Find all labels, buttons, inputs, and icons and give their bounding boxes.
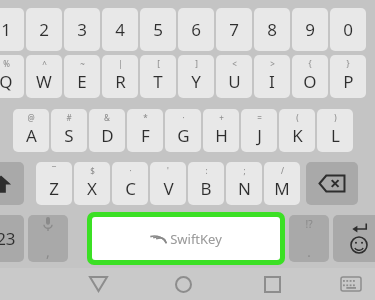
staticText: R — [115, 70, 126, 93]
button[interactable]: ) — [317, 109, 353, 152]
staticText: ' — [167, 165, 169, 176]
staticText: !? — [305, 217, 313, 231]
button[interactable]: 6 — [178, 8, 214, 51]
staticText: | — [118, 58, 123, 69]
button[interactable]: 123 — [0, 215, 24, 262]
button[interactable]: ~ — [64, 55, 100, 98]
staticText: D — [101, 124, 114, 147]
staticText: ~ — [80, 58, 85, 69]
staticText: B — [200, 177, 212, 200]
button[interactable]: · — [112, 162, 148, 205]
staticText: ] — [195, 58, 198, 69]
button[interactable]: % — [0, 55, 24, 98]
staticText: W — [36, 70, 52, 93]
staticText: ‾ — [52, 165, 56, 176]
staticText: ( — [296, 112, 299, 123]
button[interactable]: Period and punctuation — [289, 215, 329, 262]
button[interactable]: Home — [164, 268, 202, 300]
button[interactable]: ] — [178, 55, 214, 98]
staticText: 123 — [0, 227, 16, 250]
staticText: 9 — [305, 18, 315, 41]
staticText: G — [177, 124, 190, 147]
button[interactable]: SwiftKey — [92, 217, 280, 260]
staticText: SwiftKey — [170, 230, 222, 248]
button[interactable]: { — [292, 55, 328, 98]
staticText: 6 — [191, 18, 201, 41]
button[interactable]: Recent apps — [253, 268, 291, 300]
staticText: J — [257, 124, 262, 147]
staticText: : — [205, 165, 208, 176]
button[interactable]: 0 — [330, 8, 366, 51]
staticText: I — [269, 70, 275, 93]
button[interactable]: ( — [279, 109, 315, 152]
button[interactable]: · — [165, 109, 201, 152]
staticText: ) — [334, 112, 337, 123]
button[interactable]: 8 — [254, 8, 290, 51]
staticText: $ — [90, 165, 95, 176]
staticText: % — [3, 58, 10, 69]
button[interactable]: 3 — [64, 8, 100, 51]
staticText: 0 — [343, 18, 353, 41]
staticText: & — [104, 112, 110, 123]
staticText: # — [66, 112, 72, 123]
button[interactable]: / — [264, 162, 300, 205]
button[interactable]: * — [127, 109, 163, 152]
button[interactable]: Change keyboard — [336, 268, 366, 300]
staticText: T — [153, 70, 163, 93]
button[interactable]: : — [188, 162, 224, 205]
staticText: * — [143, 112, 148, 123]
staticText: 4 — [115, 18, 125, 41]
staticText: V — [163, 177, 174, 200]
staticText: 8 — [267, 18, 277, 41]
staticText: @ — [27, 112, 35, 123]
staticText: + — [219, 112, 224, 123]
button[interactable]: + — [203, 109, 239, 152]
staticText: } — [346, 58, 350, 69]
staticText: ^ — [42, 58, 47, 69]
staticText: = — [257, 112, 262, 123]
button[interactable]: Backspace — [306, 162, 358, 205]
button[interactable]: [ — [140, 55, 176, 98]
staticText: Z — [49, 177, 59, 200]
button[interactable]: 2 — [26, 8, 62, 51]
button[interactable]: @ — [13, 109, 49, 152]
button[interactable]: 7 — [216, 8, 252, 51]
staticText: [ — [157, 58, 160, 69]
button[interactable]: ‾ — [36, 162, 72, 205]
staticText: L — [331, 124, 340, 147]
staticText: 7 — [229, 18, 239, 41]
button[interactable]: 9 — [292, 8, 328, 51]
button[interactable]: Emoji and enter — [333, 215, 375, 262]
staticText: Y — [191, 70, 201, 93]
staticText: > — [270, 58, 275, 69]
button[interactable]: Hide keyboard — [79, 268, 117, 300]
button[interactable]: ^ — [26, 55, 62, 98]
button[interactable]: $ — [74, 162, 110, 205]
button[interactable]: | — [102, 55, 138, 98]
staticText: Q — [0, 70, 13, 93]
button[interactable]: ' — [150, 162, 186, 205]
staticText: { — [308, 58, 312, 69]
staticText: ; — [243, 165, 246, 176]
staticText: 2 — [39, 18, 49, 41]
staticText: < — [232, 58, 237, 69]
button[interactable]: < — [216, 55, 252, 98]
staticText: N — [238, 177, 251, 200]
button[interactable]: = — [241, 109, 277, 152]
button[interactable]: 4 — [102, 8, 138, 51]
staticText: X — [87, 177, 97, 200]
button[interactable]: Voice input and comma — [28, 215, 68, 262]
button[interactable]: } — [330, 55, 366, 98]
button[interactable]: 5 — [140, 8, 176, 51]
staticText: H — [215, 124, 228, 147]
button[interactable]: ; — [226, 162, 262, 205]
staticText: A — [26, 124, 37, 147]
button[interactable]: > — [254, 55, 290, 98]
button[interactable]: Shift — [0, 162, 24, 205]
staticText: · — [129, 165, 132, 176]
staticText: 3 — [77, 18, 87, 41]
button[interactable]: # — [51, 109, 87, 152]
staticText: M — [274, 177, 290, 200]
button[interactable]: 1 — [0, 8, 24, 51]
button[interactable]: & — [89, 109, 125, 152]
